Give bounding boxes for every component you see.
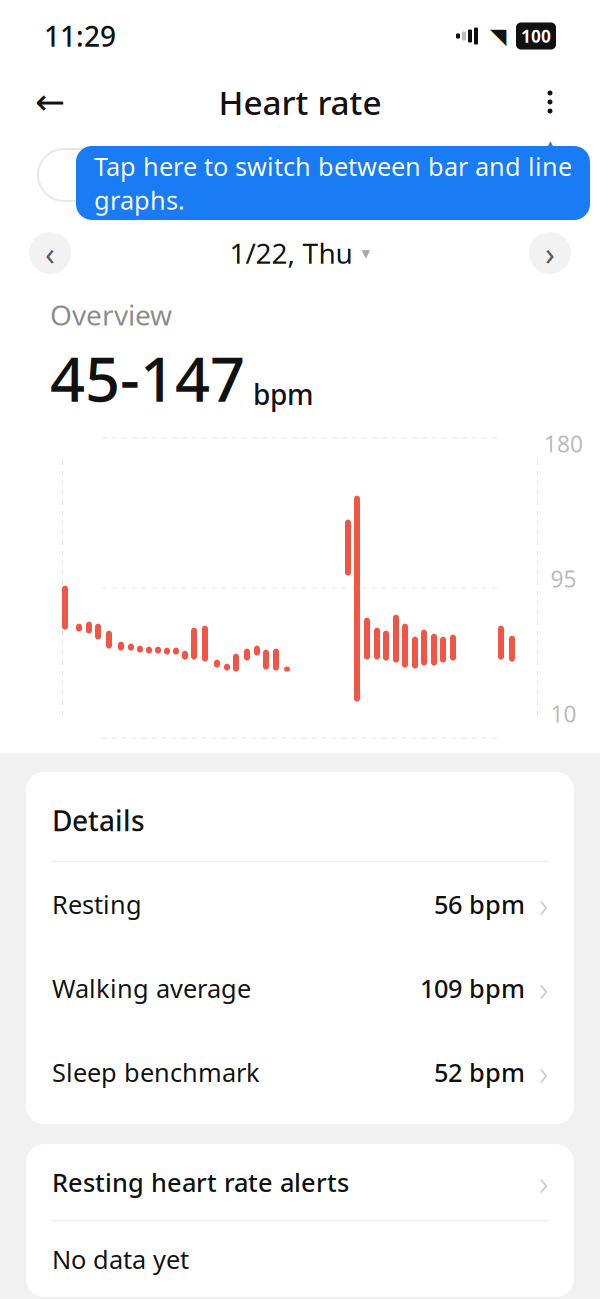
staticText: 56 bpm (434, 887, 525, 921)
button[interactable]: Sleep benchmark (26, 1030, 574, 1114)
staticText: No data yet (52, 1242, 189, 1276)
staticText: ‹ (45, 232, 55, 274)
staticText: Sleep benchmark (52, 1055, 260, 1089)
staticText: Overview (50, 296, 172, 333)
staticText: 18 (399, 747, 423, 776)
staticText: 100 (521, 24, 551, 47)
staticText: Resting heart rate alerts (52, 1165, 349, 1199)
staticText: 10 (550, 698, 576, 729)
staticText: 52 bpm (434, 1055, 525, 1089)
staticText: 00 (60, 747, 84, 776)
button[interactable]: Next day (529, 232, 571, 274)
staticText: Details (52, 802, 145, 839)
staticText: 45-147 (50, 337, 245, 419)
button[interactable]: Walking average (26, 946, 574, 1030)
staticText: Resting (52, 887, 142, 921)
button[interactable]: Previous day (29, 232, 71, 274)
staticText: 1/22, Thu (229, 234, 352, 272)
staticText: › (539, 1049, 548, 1095)
staticText: 24 (518, 747, 542, 776)
staticText: bpm (253, 375, 314, 413)
staticText: › (539, 965, 548, 1011)
staticText: 06 (161, 747, 185, 776)
staticText: 12 (280, 747, 304, 776)
button[interactable]: Back (24, 76, 76, 128)
staticText: › (539, 881, 548, 927)
staticText: 11:29 (44, 17, 116, 55)
staticText: ▾ (361, 243, 370, 263)
staticText: 180 (544, 429, 583, 459)
button[interactable]: Switch graph type (38, 149, 130, 201)
staticText: ◥ (490, 24, 506, 48)
button[interactable]: 1/22, Thu (229, 234, 370, 272)
staticText: ▲ (540, 134, 561, 164)
staticText: Walking average (52, 971, 251, 1005)
staticText: Heart rate (218, 80, 381, 124)
staticText: › (545, 232, 555, 274)
button[interactable]: More options (524, 76, 576, 128)
staticText: ← (35, 82, 65, 122)
button[interactable]: Resting heart rate alerts (26, 1144, 574, 1220)
staticText: › (539, 1159, 548, 1205)
staticText: 109 bpm (420, 971, 525, 1005)
staticText: 95 (550, 564, 576, 594)
button[interactable]: Resting (26, 862, 574, 946)
staticText: 22 (30, 747, 54, 776)
staticText: Tap here to switch between bar and line … (94, 149, 572, 217)
